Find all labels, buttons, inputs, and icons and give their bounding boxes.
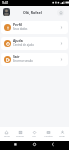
staticText: Seus dados: [13, 27, 28, 31]
button[interactable]: Pix: [27, 127, 41, 141]
staticText: Perfil: [13, 22, 22, 27]
staticText: Pix: [32, 135, 36, 138]
button[interactable]: Ajuda: [1, 37, 68, 50]
staticText: Perfil: [59, 135, 65, 138]
button[interactable]: Perfil: [55, 127, 69, 141]
staticText: Início: [4, 135, 10, 138]
staticText: Extrato: [16, 135, 24, 138]
button[interactable]: Notifications: [57, 9, 64, 16]
staticText: Olá, Rafael: [23, 10, 42, 15]
staticText: Central de ajuda: [13, 43, 34, 47]
button[interactable]: Início: [0, 127, 13, 141]
staticText: Encerrar sessão: [13, 59, 33, 63]
staticText: Cartões: [44, 135, 53, 138]
staticText: Ajuda: [13, 38, 23, 43]
button[interactable]: Cartões: [41, 127, 55, 141]
button[interactable]: Perfil: [1, 21, 68, 34]
button[interactable]: Avatar: [3, 8, 10, 16]
staticText: 9:41: [2, 0, 9, 4]
staticText: Sair: [13, 54, 20, 59]
button[interactable]: Extrato: [13, 127, 27, 141]
button[interactable]: Sair: [1, 53, 68, 66]
